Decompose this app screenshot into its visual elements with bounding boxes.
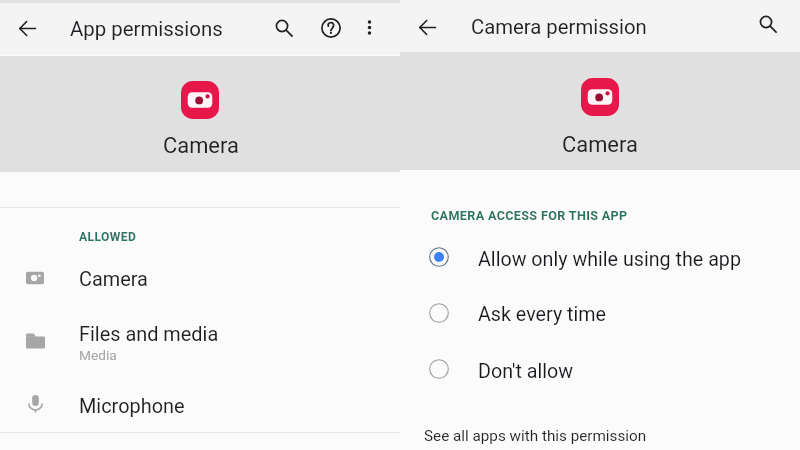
staticText: ALLOWED: [79, 230, 137, 244]
staticText: App permissions: [70, 17, 223, 41]
staticText: Don't allow: [478, 360, 574, 383]
button[interactable]: Back: [419, 19, 436, 36]
button[interactable]: Search: [275, 19, 293, 37]
staticText: Media: [79, 347, 117, 363]
staticText: Camera: [79, 268, 148, 291]
button[interactable]: Don't allow: [400, 341, 800, 396]
button[interactable]: Help: [321, 18, 341, 38]
staticText: Ask every time: [478, 303, 607, 326]
button[interactable]: More options: [362, 20, 377, 35]
button[interactable]: Search: [759, 15, 777, 33]
button[interactable]: Back: [19, 20, 36, 37]
staticText: Allow only while using the app: [478, 248, 741, 271]
button[interactable]: Microphone: [0, 378, 400, 433]
staticText: Camera permission: [471, 15, 647, 39]
staticText: CAMERA ACCESS FOR THIS APP: [431, 208, 628, 223]
staticText: Camera: [163, 133, 239, 159]
staticText: Microphone: [79, 395, 185, 418]
button[interactable]: Allow only while using the app: [400, 230, 800, 285]
staticText: Files and media: [79, 323, 219, 346]
button[interactable]: Files and media: [0, 310, 400, 370]
staticText: Camera: [562, 132, 638, 158]
button[interactable]: Ask every time: [400, 285, 800, 340]
button[interactable]: See all apps with this permission: [424, 427, 647, 445]
button[interactable]: Camera: [0, 250, 400, 306]
